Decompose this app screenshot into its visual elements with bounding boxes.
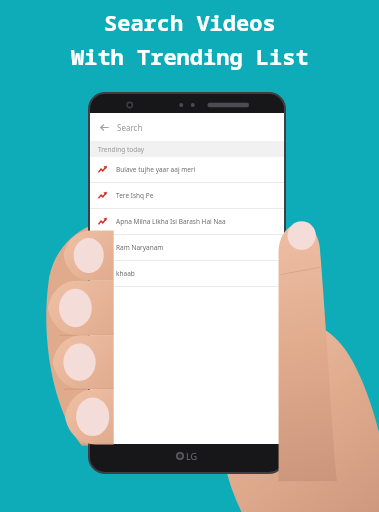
staticText: Search: [117, 122, 143, 133]
staticText: khaab: [116, 269, 135, 278]
button[interactable]: Ram Naryanam: [90, 235, 284, 260]
staticText: Ram Naryanam: [116, 243, 164, 252]
button[interactable]: Apna Milna Likha Isi Barash Hai Naa: [90, 209, 284, 234]
staticText: Tere Ishq Pe: [116, 191, 154, 200]
button[interactable]: Back: [90, 113, 284, 141]
staticText: Search Videos: [104, 7, 276, 37]
staticText: Bulave tujhe yaar aaj meri: [116, 165, 196, 174]
staticText: With Trending List: [71, 41, 309, 71]
button[interactable]: Tere Ishq Pe: [90, 183, 284, 208]
staticText: Apna Milna Likha Isi Barash Hai Naa: [116, 217, 226, 226]
button[interactable]: khaab: [90, 261, 284, 286]
staticText: LG: [186, 450, 198, 462]
button[interactable]: Bulave tujhe yaar aaj meri: [90, 157, 284, 182]
button[interactable]: Back: [97, 120, 111, 134]
staticText: Trending today: [98, 145, 145, 154]
